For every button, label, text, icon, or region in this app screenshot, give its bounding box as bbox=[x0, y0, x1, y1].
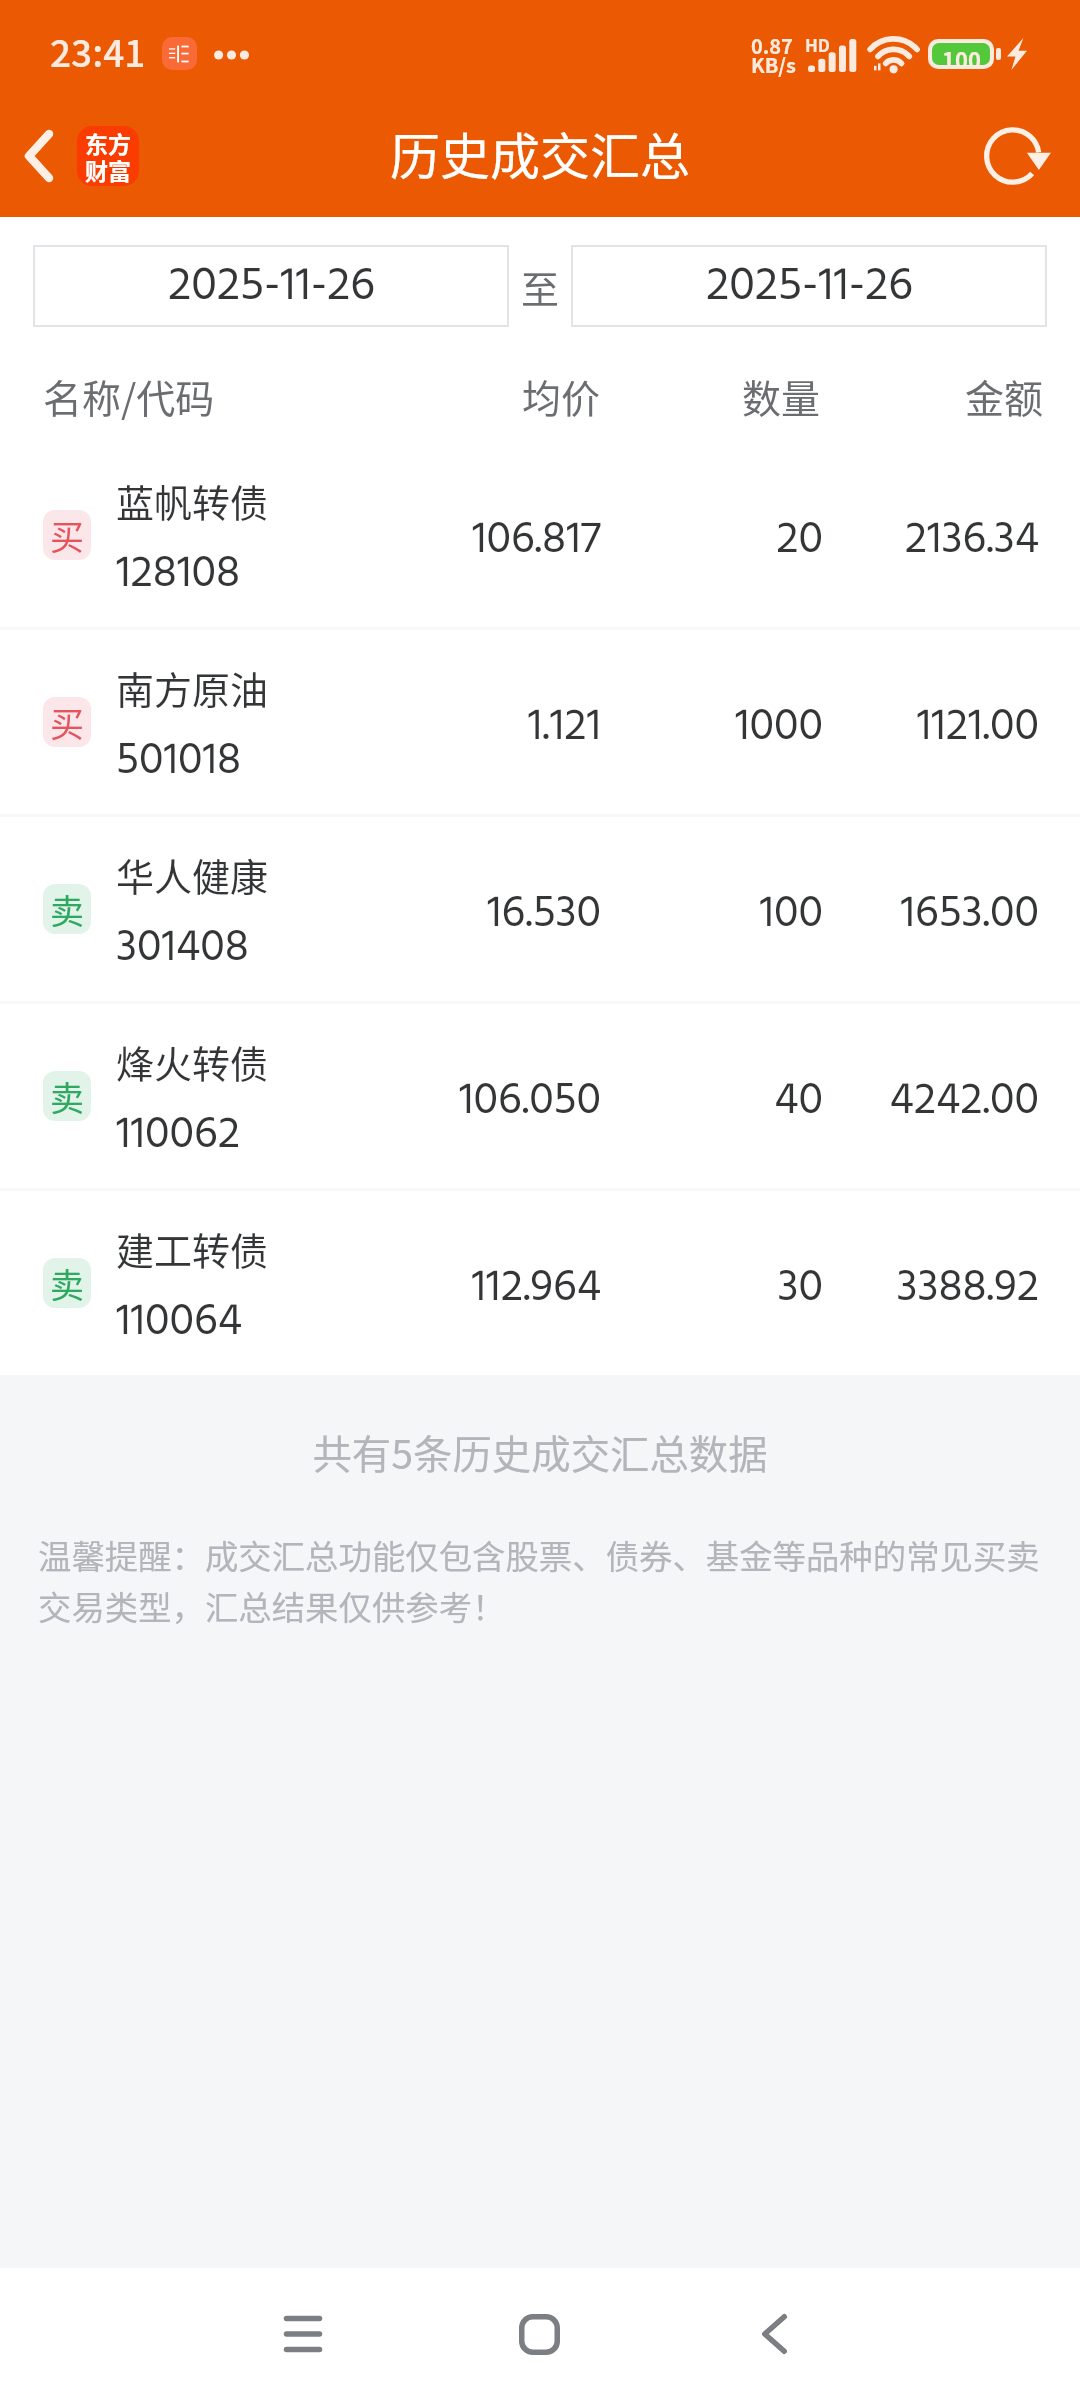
staticText: 历史成交汇总 bbox=[390, 117, 690, 189]
staticText: 110062 bbox=[116, 1100, 240, 1172]
button[interactable]: 返回 bbox=[714, 2268, 834, 2400]
staticText: 100 bbox=[602, 879, 823, 951]
staticText: 100 bbox=[942, 43, 981, 65]
staticText: 20 bbox=[602, 505, 823, 577]
staticText: 金额 bbox=[826, 368, 1043, 424]
staticText: 卖 bbox=[50, 1259, 84, 1308]
staticText: HD bbox=[805, 32, 831, 57]
staticText: 烽火转债 bbox=[116, 1034, 269, 1089]
staticText: 名称/代码 bbox=[43, 368, 215, 424]
staticText: 东方 财富 bbox=[85, 126, 131, 186]
staticText: 建工转债 bbox=[116, 1221, 269, 1276]
staticText: 温馨提醒：成交汇总功能仅包含股票、债券、基金等品种的常见买卖交易类型，汇总结果仅… bbox=[38, 1530, 1044, 1629]
staticText: 2136.34 bbox=[822, 505, 1039, 577]
staticText: 4242.00 bbox=[822, 1066, 1039, 1138]
staticText: 均价 bbox=[430, 368, 600, 424]
staticText: 蓝帆转债 bbox=[116, 473, 269, 528]
staticText: 301408 bbox=[116, 913, 249, 985]
button[interactable]: 卖 bbox=[0, 1004, 1080, 1188]
staticText: 2025-11-26 bbox=[706, 249, 913, 324]
staticText: 2025-11-26 bbox=[168, 249, 375, 324]
staticText: 卖 bbox=[50, 885, 84, 934]
button[interactable]: 买 bbox=[0, 443, 1080, 627]
staticText: 1121.00 bbox=[822, 692, 1039, 764]
staticText: 共有5条历史成交汇总数据 bbox=[0, 1423, 1080, 1480]
staticText: 30 bbox=[602, 1253, 823, 1325]
button[interactable]: 主页 bbox=[479, 2268, 599, 2400]
button[interactable]: 东方财富 bbox=[77, 126, 139, 186]
button[interactable]: 2025-11-26 bbox=[33, 245, 509, 327]
button[interactable]: 刷新 bbox=[958, 95, 1080, 217]
staticText: 1.121 bbox=[431, 692, 601, 764]
staticText: 至 bbox=[521, 259, 560, 314]
staticText: 1653.00 bbox=[822, 879, 1039, 951]
staticText: 128108 bbox=[116, 539, 241, 611]
button[interactable]: 买 bbox=[0, 630, 1080, 814]
button[interactable]: 卖 bbox=[0, 1191, 1080, 1375]
staticText: 23:41 bbox=[50, 24, 146, 78]
staticText: 110064 bbox=[116, 1287, 243, 1359]
staticText: 卖 bbox=[50, 1072, 84, 1121]
button[interactable]: 最近任务 bbox=[243, 2268, 363, 2400]
button[interactable]: 返回 bbox=[0, 95, 77, 217]
staticText: KB/s bbox=[751, 50, 796, 79]
staticText: 买 bbox=[50, 511, 84, 560]
staticText: 华人健康 bbox=[116, 847, 269, 902]
staticText: 数量 bbox=[599, 368, 820, 424]
button[interactable]: 2025-11-26 bbox=[571, 245, 1047, 327]
staticText: 南方原油 bbox=[116, 660, 269, 715]
staticText: 3388.92 bbox=[822, 1253, 1039, 1325]
staticText: 买 bbox=[50, 698, 84, 747]
staticText: 1000 bbox=[602, 692, 823, 764]
staticText: 16.530 bbox=[431, 879, 601, 951]
staticText: 501018 bbox=[116, 726, 242, 798]
staticText: 106.050 bbox=[431, 1066, 601, 1138]
staticText: 40 bbox=[602, 1066, 823, 1138]
button[interactable]: 卖 bbox=[0, 817, 1080, 1001]
staticText: 112.964 bbox=[431, 1253, 601, 1325]
staticText: 0.87 bbox=[751, 31, 793, 60]
staticText: 106.817 bbox=[431, 505, 601, 577]
